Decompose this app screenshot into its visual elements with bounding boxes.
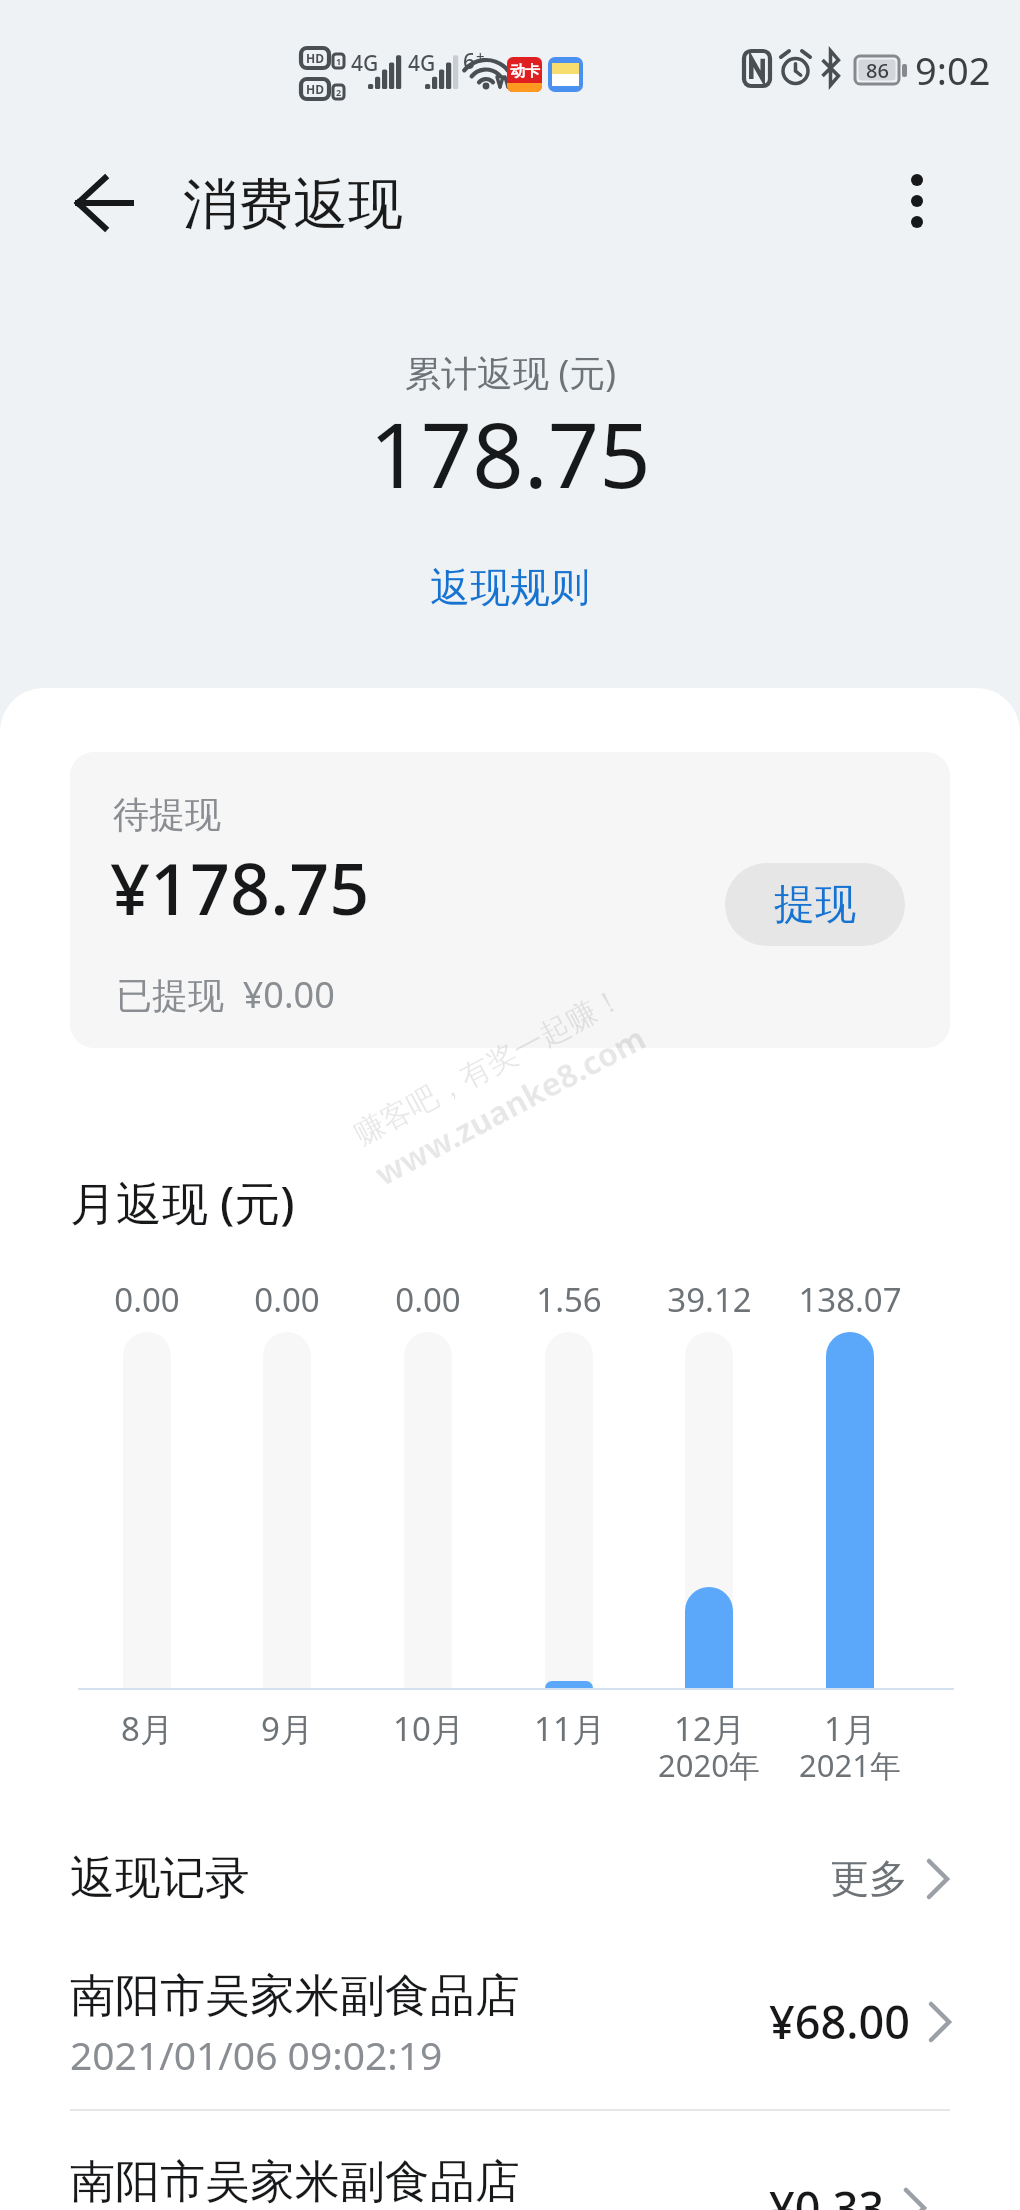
button[interactable]: 更多	[822, 1846, 958, 1911]
staticText: 2021年	[799, 1744, 901, 1786]
button[interactable]: Back	[46, 145, 159, 258]
staticText: 2020年	[658, 1744, 760, 1786]
staticText: 1月	[824, 1706, 876, 1751]
staticText: 消费返现	[183, 170, 403, 239]
staticText: 提现	[774, 879, 856, 931]
staticText: 6	[463, 47, 476, 76]
staticText: 4G	[351, 49, 379, 78]
staticText: 86	[866, 57, 889, 84]
button[interactable]: 南阳市吴家米副食品店	[0, 2148, 1020, 2210]
staticText: 0.00	[114, 1277, 180, 1322]
staticText: 南阳市吴家米副食品店	[70, 2154, 520, 2210]
staticText: +	[476, 46, 485, 66]
staticText: 10月	[393, 1706, 464, 1751]
staticText: 4G	[408, 49, 436, 78]
staticText: 月返现 (元)	[70, 1171, 295, 1234]
staticText: 11月	[534, 1706, 605, 1751]
staticText: 待提现	[113, 792, 221, 837]
staticText: HD	[306, 81, 324, 97]
staticText: 39.12	[667, 1277, 752, 1322]
staticText: 2	[336, 86, 342, 98]
staticText: 动卡	[510, 62, 540, 81]
staticText: 9月	[261, 1706, 313, 1751]
staticText: www.zuanke8.com	[367, 1015, 653, 1196]
staticText: 南阳市吴家米副食品店	[70, 1968, 520, 2025]
button[interactable]: More options	[867, 151, 967, 251]
staticText: 1	[336, 55, 342, 67]
staticText: 已提现 ¥0.00	[116, 970, 335, 1019]
staticText: HD	[306, 50, 324, 66]
staticText: 9:02	[915, 44, 991, 96]
staticText: 返现规则	[430, 562, 590, 612]
button[interactable]: 返现规则	[416, 556, 604, 618]
staticText: 0.00	[395, 1277, 461, 1322]
staticText: 138.07	[798, 1277, 902, 1322]
staticText: ¥178.75	[110, 840, 370, 935]
staticText: ¥0.33	[769, 2177, 885, 2210]
button[interactable]: 南阳市吴家米副食品店	[0, 1962, 1020, 2105]
staticText: 更多	[830, 1854, 908, 1903]
staticText: ¥68.00	[769, 1991, 910, 2052]
staticText: 返现记录	[70, 1850, 250, 1907]
staticText: 12月	[674, 1706, 745, 1751]
staticText: 0.00	[254, 1277, 320, 1322]
staticText: 8月	[121, 1706, 173, 1751]
staticText: 累计返现 (元)	[405, 348, 616, 397]
staticText: 178.75	[369, 392, 651, 515]
staticText: 1.56	[536, 1277, 602, 1322]
staticText: 赚客吧，有奖一起赚！	[347, 979, 630, 1153]
button[interactable]: 提现	[725, 863, 905, 946]
staticText: 2021/01/06 09:02:19	[70, 2028, 443, 2081]
